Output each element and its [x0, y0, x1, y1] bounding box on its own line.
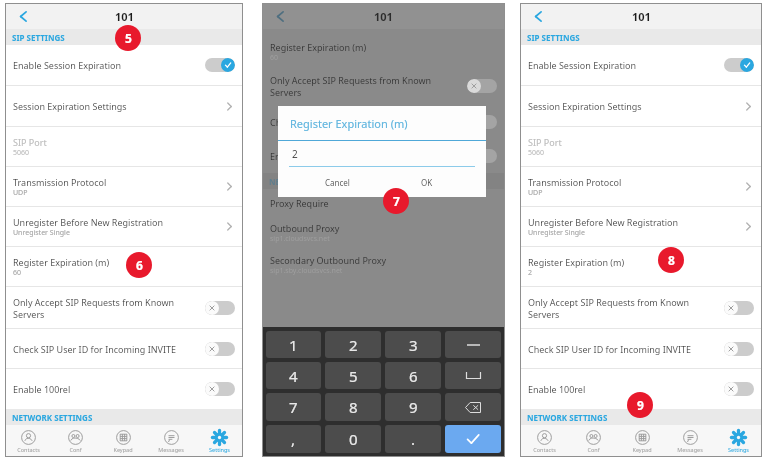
- button[interactable]: .: [385, 425, 441, 453]
- staticText: 101: [632, 9, 651, 24]
- staticText: Enable 100rel: [528, 383, 586, 395]
- button[interactable]: Only Accept SIP Requests from Known: [520, 287, 762, 328]
- button[interactable]: Space: [445, 362, 501, 389]
- staticText: Unregister Before New Registration: [13, 216, 164, 228]
- button[interactable]: Minus: [445, 331, 501, 358]
- button[interactable]: Outbound Proxy: [262, 217, 505, 249]
- button[interactable]: Back: [269, 5, 291, 27]
- button[interactable]: Keypad: [618, 425, 666, 457]
- staticText: Enable 100rel: [13, 383, 71, 395]
- staticText: 9: [409, 397, 418, 417]
- staticText: Secondary Outbound Proxy: [270, 254, 386, 266]
- button[interactable]: 0: [325, 425, 381, 453]
- staticText: Unregister Single: [13, 228, 70, 238]
- button[interactable]: Toggle off: [205, 382, 235, 396]
- button[interactable]: 3: [385, 331, 441, 358]
- staticText: 60: [13, 268, 22, 278]
- staticText: UDP: [528, 188, 543, 198]
- button[interactable]: 6: [385, 362, 441, 389]
- staticText: 0: [349, 429, 358, 449]
- button[interactable]: 5: [325, 362, 381, 389]
- button[interactable]: Secondary Outbound Proxy: [262, 249, 505, 281]
- button[interactable]: Toggle off: [467, 115, 497, 129]
- staticText: Contacts: [533, 446, 556, 453]
- button[interactable]: Register Expiration (m): [5, 247, 243, 286]
- staticText: 60: [270, 53, 279, 63]
- button[interactable]: Register Expiration (m): [262, 37, 505, 67]
- button[interactable]: Enable 100rel: [520, 369, 762, 409]
- staticText: 2: [528, 268, 533, 278]
- staticText: Check SIP User ID for Incoming INVITE: [528, 343, 692, 355]
- button[interactable]: Messages: [666, 425, 714, 457]
- button[interactable]: Keypad: [99, 425, 147, 457]
- staticText: Enable Session Expiration: [528, 59, 636, 71]
- staticText: Register Expiration (m): [13, 256, 110, 268]
- button[interactable]: Confirm: [445, 425, 501, 453]
- staticText: 7: [393, 193, 400, 209]
- button[interactable]: Unregister Before New Registration: [520, 207, 762, 246]
- button[interactable]: ,: [266, 425, 321, 453]
- button[interactable]: Toggle off: [724, 382, 754, 396]
- button[interactable]: Enable Session Expiration: [5, 45, 243, 85]
- button[interactable]: Cancel: [292, 167, 382, 197]
- staticText: Register Expiration (m): [270, 41, 367, 53]
- button[interactable]: Transmission Protocol: [5, 167, 243, 206]
- button[interactable]: 8: [325, 393, 381, 421]
- button[interactable]: Settings: [714, 425, 762, 457]
- button[interactable]: Check SIP User ID for Incoming INVITE: [262, 105, 505, 139]
- button[interactable]: SIP Port: [520, 127, 762, 166]
- button[interactable]: Session Expiration Settings: [520, 86, 762, 126]
- staticText: Check SIP User ID for Incoming INVITE: [270, 116, 434, 128]
- button[interactable]: Only Accept SIP Requests from Known: [262, 67, 505, 105]
- button[interactable]: 2: [325, 331, 381, 358]
- staticText: Check SIP User ID for Incoming INVITE: [13, 343, 177, 355]
- staticText: 5: [349, 366, 358, 386]
- staticText: Enable 100rel: [270, 150, 328, 162]
- button[interactable]: Transmission Protocol: [520, 167, 762, 206]
- button[interactable]: Session Expiration Settings: [5, 86, 243, 126]
- staticText: 5060: [13, 148, 30, 158]
- button[interactable]: Check SIP User ID for Incoming INVITE: [5, 329, 243, 368]
- button[interactable]: Register Expiration (m): [520, 247, 762, 286]
- button[interactable]: Enable 100rel: [5, 369, 243, 409]
- button[interactable]: 7: [266, 393, 321, 421]
- button[interactable]: Settings: [195, 425, 243, 457]
- staticText: Unregister Before New Registration: [528, 216, 679, 228]
- staticText: 101: [374, 9, 393, 24]
- button[interactable]: Toggle on: [205, 58, 235, 72]
- staticText: 6: [136, 257, 143, 273]
- staticText: Keypad: [632, 446, 652, 453]
- button[interactable]: Contacts: [5, 425, 52, 457]
- staticText: Cancel: [325, 177, 350, 188]
- button[interactable]: Conf: [569, 425, 618, 457]
- button[interactable]: 1: [266, 331, 321, 358]
- button[interactable]: Toggle off: [724, 342, 754, 356]
- staticText: .: [411, 429, 416, 449]
- button[interactable]: Toggle off: [467, 79, 497, 93]
- button[interactable]: Toggle off: [724, 301, 754, 315]
- button[interactable]: Toggle off: [467, 149, 497, 163]
- button[interactable]: Check SIP User ID for Incoming INVITE: [520, 329, 762, 368]
- staticText: Transmission Protocol: [13, 176, 107, 188]
- button[interactable]: 9: [385, 393, 441, 421]
- button[interactable]: OK: [382, 167, 472, 197]
- button[interactable]: Toggle off: [205, 342, 235, 356]
- button[interactable]: Enable 100rel: [262, 139, 505, 173]
- button[interactable]: SIP Port: [5, 127, 243, 166]
- button[interactable]: Messages: [147, 425, 195, 457]
- button[interactable]: Unregister Before New Registration: [5, 207, 243, 246]
- button[interactable]: Toggle off: [205, 301, 235, 315]
- staticText: 5: [125, 30, 132, 46]
- button[interactable]: Backspace: [445, 393, 501, 421]
- button[interactable]: Contacts: [520, 425, 569, 457]
- staticText: Session Expiration Settings: [13, 100, 127, 112]
- button[interactable]: Enable Session Expiration: [520, 45, 762, 85]
- button[interactable]: 4: [266, 362, 321, 389]
- staticText: SIP SETTINGS: [527, 32, 580, 43]
- button[interactable]: Only Accept SIP Requests from Known: [5, 287, 243, 328]
- button[interactable]: Conf: [52, 425, 99, 457]
- button[interactable]: Proxy Require: [262, 189, 505, 217]
- button[interactable]: Back: [527, 5, 549, 27]
- button[interactable]: Toggle on: [724, 58, 754, 72]
- button[interactable]: Back: [12, 5, 34, 27]
